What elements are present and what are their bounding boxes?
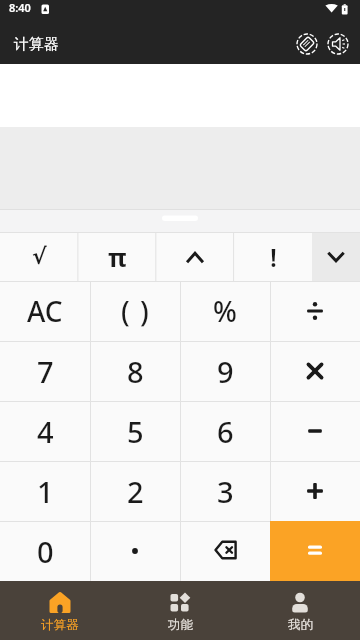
button[interactable]: π [78, 232, 156, 281]
button[interactable]: 9 [180, 341, 270, 401]
staticText: 2 [127, 472, 144, 511]
staticText: % [213, 292, 237, 330]
staticText: 计算器 [14, 35, 59, 54]
staticText: 3 [217, 472, 234, 511]
staticText: ) [140, 292, 149, 330]
staticText: 0 [37, 532, 54, 571]
button[interactable]: 7 [0, 341, 90, 401]
button[interactable] [270, 521, 360, 581]
button[interactable] [180, 521, 270, 581]
button[interactable]: 8 [90, 341, 180, 401]
button[interactable]: √ [0, 232, 78, 281]
staticText: 8 [127, 352, 144, 391]
staticText: 7 [37, 352, 54, 391]
staticText: 1 [37, 472, 54, 511]
button[interactable]: AC [0, 281, 90, 341]
staticText: ! [270, 240, 277, 274]
staticText: AC [27, 292, 63, 330]
staticText: 4 [37, 412, 54, 451]
staticText: 我的 [288, 617, 313, 633]
button[interactable]: 我的 [240, 581, 360, 640]
button[interactable]: 2 [90, 461, 180, 521]
button[interactable]: % [180, 281, 270, 341]
button[interactable] [270, 341, 360, 401]
button[interactable]: 1 [0, 461, 90, 521]
button[interactable]: ! [234, 232, 312, 281]
button[interactable] [270, 461, 360, 521]
button[interactable]: 6 [180, 401, 270, 461]
staticText: 9 [217, 352, 234, 391]
staticText: 功能 [168, 617, 193, 633]
button[interactable]: ( [90, 281, 180, 341]
button[interactable] [293, 30, 321, 58]
staticText: √ [32, 244, 47, 270]
button[interactable] [270, 281, 360, 341]
button[interactable]: 计算器 [0, 581, 120, 640]
staticText: π [108, 240, 127, 274]
button[interactable]: 4 [0, 401, 90, 461]
button[interactable]: 5 [90, 401, 180, 461]
button[interactable]: 0 [0, 521, 90, 581]
staticText: ( [121, 292, 130, 330]
button[interactable]: 功能 [120, 581, 240, 640]
button[interactable] [156, 232, 234, 281]
button[interactable] [270, 401, 360, 461]
staticText: 5 [127, 412, 144, 451]
button[interactable] [90, 521, 180, 581]
staticText: 6 [217, 412, 234, 451]
staticText: 计算器 [41, 617, 79, 633]
button[interactable] [324, 30, 352, 58]
button[interactable] [312, 232, 360, 281]
staticText: 8:40 [9, 0, 31, 15]
button[interactable]: 3 [180, 461, 270, 521]
